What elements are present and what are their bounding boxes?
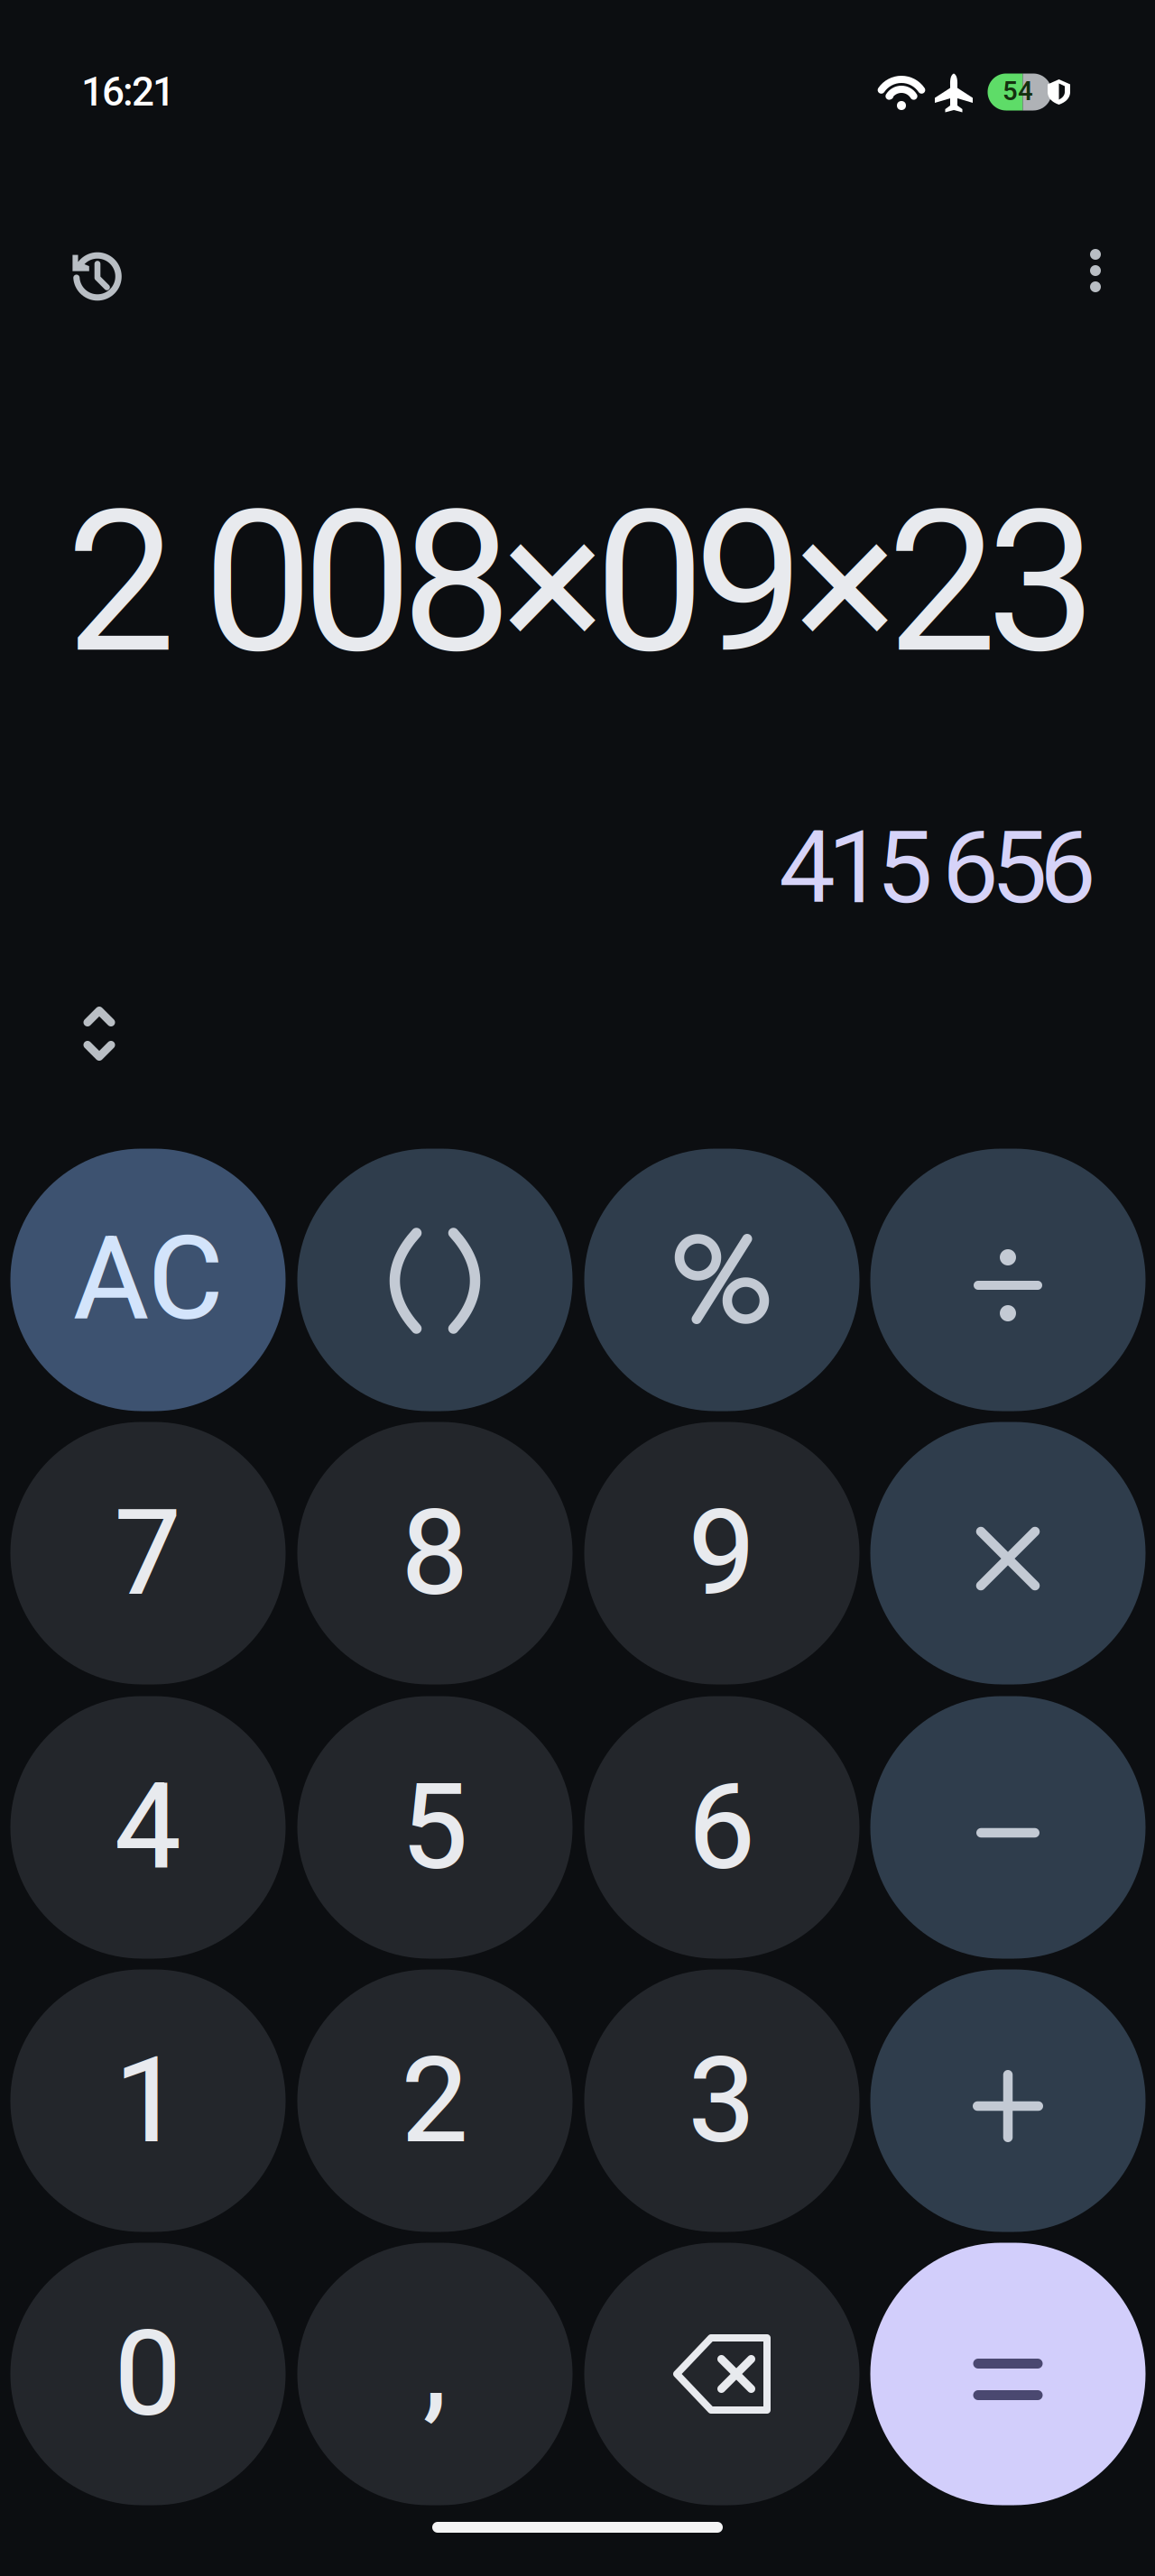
button[interactable] [584, 1149, 859, 1411]
button[interactable] [870, 2243, 1146, 2505]
staticText: 1 [114, 2031, 182, 2170]
staticText: 0 [114, 2304, 182, 2444]
button[interactable]: 4 [10, 1696, 286, 1959]
button[interactable]: 5 [297, 1696, 573, 1959]
staticText: 4 [114, 1758, 182, 1897]
button[interactable]: 6 [584, 1696, 859, 1959]
button[interactable]: AC [10, 1149, 286, 1411]
button[interactable] [870, 1422, 1146, 1684]
staticText: 8 [401, 1483, 469, 1623]
button[interactable]: 8 [297, 1422, 573, 1684]
button[interactable]: 3 [584, 1969, 859, 2232]
staticText: 2 008×09×23 [66, 468, 1096, 698]
staticText: 54 [1003, 76, 1033, 107]
staticText: 7 [114, 1483, 182, 1623]
staticText: AC [73, 1211, 223, 1347]
button[interactable]: , [297, 2243, 573, 2505]
button[interactable] [870, 1696, 1146, 1959]
staticText: 2 [401, 2031, 469, 2170]
button[interactable] [297, 1149, 573, 1411]
staticText: , [423, 2296, 447, 2436]
staticText: 3 [688, 2031, 756, 2170]
button[interactable] [584, 2243, 859, 2505]
staticText: 16:21 [81, 69, 175, 115]
staticText: 6 [688, 1758, 756, 1897]
button[interactable]: 1 [10, 1969, 286, 2232]
staticText: 415 656 [779, 809, 1096, 927]
staticText: 9 [688, 1483, 756, 1623]
button[interactable]: 7 [10, 1422, 286, 1684]
staticText: 5 [401, 1758, 469, 1897]
button[interactable] [870, 1149, 1146, 1411]
button[interactable]: More options [1063, 227, 1128, 314]
button[interactable]: 2 [297, 1969, 573, 2232]
button[interactable] [870, 1969, 1146, 2232]
button[interactable]: History [54, 233, 141, 319]
button[interactable]: 9 [584, 1422, 859, 1684]
button[interactable]: 0 [10, 2243, 286, 2505]
button[interactable]: Expand calculation history [56, 984, 143, 1083]
